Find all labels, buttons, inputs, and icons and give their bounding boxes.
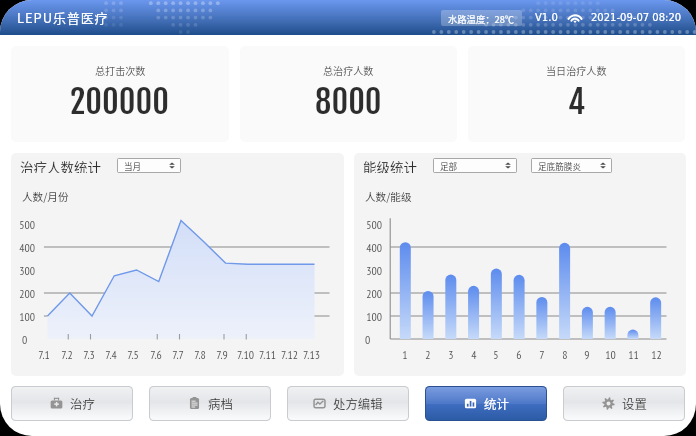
staticText: 7.8: [194, 347, 206, 362]
staticText: 200: [366, 286, 382, 301]
staticText: 400: [366, 240, 382, 255]
other: WiFi: [569, 14, 581, 23]
staticText: 7.1: [38, 347, 50, 362]
staticText: 0: [22, 332, 28, 347]
staticText: 7.4: [105, 347, 117, 362]
staticText: 6: [516, 347, 522, 362]
staticText: 人数/能级: [365, 189, 412, 204]
staticText: 0: [365, 332, 371, 347]
staticText: 足底筋膜炎: [538, 160, 581, 172]
staticText: 8: [562, 347, 568, 362]
staticText: 能级统计: [363, 157, 417, 173]
button[interactable]: 当日治疗人数: [468, 46, 685, 142]
staticText: 2: [425, 347, 431, 362]
button[interactable]: 总治疗人数: [240, 46, 457, 142]
button[interactable]: 足底筋膜炎: [532, 159, 611, 172]
staticText: 500: [366, 217, 382, 232]
staticText: 4: [568, 82, 586, 122]
staticText: 10: [605, 347, 616, 362]
staticText: 总打击次数: [95, 63, 146, 78]
staticText: 人数/月份: [22, 189, 69, 204]
button[interactable]: 统计: [426, 387, 546, 420]
staticText: 300: [19, 263, 35, 278]
staticText: 300: [366, 263, 382, 278]
staticText: 100: [366, 309, 382, 324]
button[interactable]: 总打击次数: [11, 46, 229, 142]
staticText: 7.2: [61, 347, 73, 362]
staticText: 1: [402, 347, 408, 362]
staticText: 治疗: [70, 395, 95, 413]
staticText: 7: [539, 347, 545, 362]
staticText: 11: [628, 347, 639, 362]
staticText: 3: [448, 347, 454, 362]
staticText: 7.12: [281, 347, 298, 362]
staticText: 7.13: [303, 347, 320, 362]
staticText: 5: [493, 347, 499, 362]
button[interactable]: 治疗: [12, 387, 132, 420]
staticText: 12: [651, 347, 662, 362]
staticText: 7.3: [83, 347, 95, 362]
staticText: 治疗人数统计: [20, 157, 101, 173]
staticText: 4: [471, 347, 477, 362]
staticText: 7.5: [127, 347, 139, 362]
staticText: 总治疗人数: [323, 63, 374, 78]
staticText: 病档: [208, 395, 233, 413]
button[interactable]: 病档: [150, 387, 270, 420]
staticText: 8000: [315, 82, 382, 122]
staticText: 足部: [440, 160, 458, 172]
staticText: 水路温度：28℃: [448, 12, 515, 25]
staticText: V1.0: [535, 12, 558, 24]
staticText: 400: [19, 240, 35, 255]
staticText: 9: [584, 347, 590, 362]
button[interactable]: 足部: [434, 159, 516, 172]
staticText: 7.10: [237, 347, 254, 362]
staticText: 2021-09-07 08:20: [591, 12, 682, 24]
staticText: 处方编辑: [333, 395, 383, 413]
staticText: LEPU乐普医疗: [17, 8, 109, 27]
staticText: 200: [19, 286, 35, 301]
staticText: 7.9: [216, 347, 228, 362]
staticText: 当月: [124, 160, 142, 172]
staticText: 当日治疗人数: [546, 63, 607, 78]
staticText: 统计: [484, 395, 509, 413]
staticText: 100: [19, 309, 35, 324]
staticText: 设置: [622, 395, 647, 413]
button[interactable]: 处方编辑: [288, 387, 408, 420]
staticText: 200000: [70, 82, 170, 122]
staticText: 7.6: [150, 347, 162, 362]
staticText: 7.7: [172, 347, 184, 362]
staticText: 500: [19, 217, 35, 232]
button[interactable]: 当月: [118, 159, 180, 172]
button[interactable]: 设置: [564, 387, 684, 420]
staticText: 7.11: [259, 347, 276, 362]
